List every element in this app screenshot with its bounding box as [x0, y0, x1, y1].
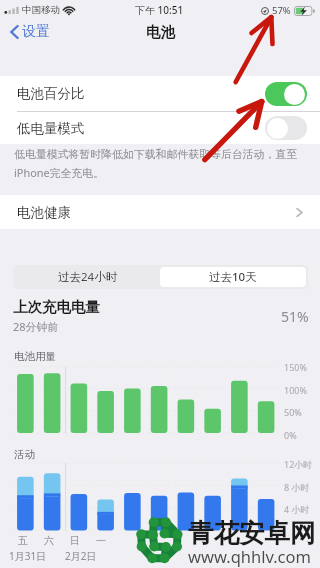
staticText: iPhone完全充电。	[14, 165, 105, 180]
staticText: 2月2日	[65, 549, 97, 563]
staticText: 电池百分比	[17, 85, 85, 102]
staticText: 0%	[284, 429, 297, 441]
staticText: 50%	[284, 406, 302, 418]
staticText: 28分钟前	[13, 319, 59, 334]
staticText: 100%	[284, 384, 307, 396]
staticText: 低电量模式将暂时降低如下载和邮件获取等后台活动，直至	[14, 148, 298, 162]
staticText: 57%	[272, 4, 291, 17]
staticText: 8 小时	[284, 481, 310, 493]
staticText: 一	[96, 534, 106, 547]
button[interactable]: 过去10天	[160, 267, 306, 287]
staticText: 下午 10:51	[135, 3, 184, 17]
button[interactable]: 电池健康	[0, 195, 320, 229]
staticText: 4 小时	[284, 503, 310, 515]
staticText: 低电量模式	[17, 120, 85, 137]
staticText: 上次充电电量	[13, 298, 100, 316]
staticText: 过去10天	[209, 269, 257, 285]
staticText: 设置	[22, 23, 50, 41]
staticText: 电池健康	[17, 204, 71, 221]
staticText: 青花安卓网	[188, 517, 316, 549]
staticText: 电池	[146, 23, 175, 41]
staticText: 51%	[281, 307, 309, 326]
button[interactable]: 低电量模式	[0, 112, 320, 144]
button[interactable]: Toggle on	[265, 82, 307, 106]
staticText: 五	[18, 534, 28, 547]
staticText: 150%	[284, 361, 307, 373]
staticText: 过去24小时	[58, 269, 118, 285]
button[interactable]: 电池百分比	[0, 76, 320, 111]
button[interactable]: 过去24小时	[15, 267, 160, 287]
staticText: 日	[70, 534, 80, 547]
staticText: www.qhhlv.com	[188, 545, 311, 567]
staticText: 12小时	[284, 458, 313, 470]
staticText: 电池用量	[14, 350, 56, 363]
button[interactable]: Toggle off	[265, 116, 307, 140]
button[interactable]: 设置	[10, 18, 56, 46]
staticText: 活动	[14, 448, 35, 461]
staticText: 1月31日	[9, 549, 47, 563]
staticText: 六	[44, 534, 54, 547]
staticText: 中国移动	[22, 4, 60, 16]
